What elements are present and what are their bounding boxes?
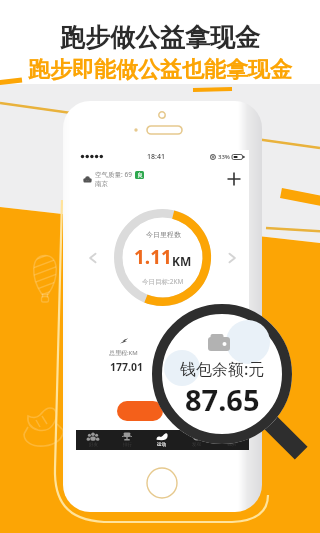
- staticText: 177.01: [110, 360, 143, 374]
- staticText: 33%: [218, 153, 230, 161]
- button[interactable]: Start run: [117, 401, 163, 421]
- staticText: 运动: [157, 442, 166, 448]
- staticText: 南京: [95, 180, 108, 188]
- staticText: 跑步即能做公益也能拿现金: [28, 56, 292, 84]
- button[interactable]: Add: [226, 171, 242, 187]
- button[interactable]: Previous: [84, 249, 102, 267]
- staticText: 跑步做公益拿现金: [60, 22, 260, 53]
- button[interactable]: 排行: [110, 430, 144, 450]
- staticText: 今日目标:2KM: [142, 277, 184, 286]
- staticText: 排行: [123, 442, 132, 448]
- staticText: 1.11: [134, 244, 172, 270]
- staticText: 好友: [89, 442, 98, 448]
- staticText: 空气质量: 69: [95, 170, 132, 179]
- staticText: 总里程:KM: [109, 349, 138, 357]
- staticText: KM: [172, 253, 192, 269]
- staticText: 18:41: [147, 152, 165, 162]
- button[interactable]: 我的: [214, 430, 249, 450]
- staticText: 今日里程数: [146, 230, 181, 239]
- staticText: 发现: [192, 442, 201, 448]
- staticText: 87.65: [185, 380, 260, 419]
- staticText: 钱包余额:元: [180, 358, 265, 380]
- staticText: 我的: [227, 442, 236, 448]
- button[interactable]: 好友: [76, 430, 110, 450]
- button[interactable]: 发现: [179, 430, 214, 450]
- staticText: 良: [137, 172, 143, 179]
- button[interactable]: 运动: [144, 430, 179, 450]
- button[interactable]: Next: [223, 249, 241, 267]
